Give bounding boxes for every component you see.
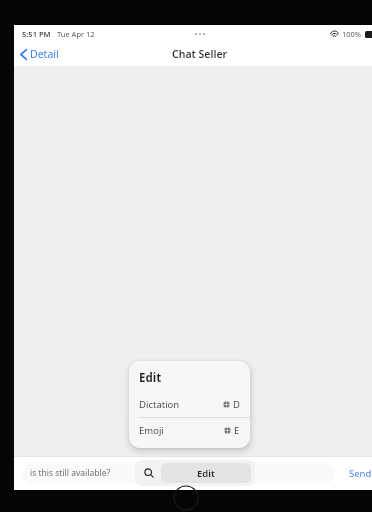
staticText: 100% (342, 29, 362, 39)
button[interactable]: Search (139, 463, 159, 483)
button[interactable]: Send (343, 463, 372, 484)
staticText: Edit (139, 370, 162, 386)
staticText: D (233, 398, 240, 411)
staticText: Tue Apr 12 (57, 29, 95, 39)
button[interactable]: Edit (161, 463, 251, 483)
button[interactable]: Emoji (129, 418, 250, 443)
staticText: Detail (30, 47, 59, 61)
staticText: Emoji (139, 424, 164, 437)
staticText: is this still available? (30, 467, 111, 479)
button[interactable]: Detail (14, 44, 67, 64)
staticText: Edit (197, 467, 215, 480)
button[interactable]: Dictation (129, 392, 250, 417)
staticText: Dictation (139, 398, 180, 411)
button[interactable]: is this still available? (22, 462, 335, 484)
staticText: E (234, 424, 240, 437)
staticText: 5:51 PM (22, 29, 51, 39)
staticText: Chat Seller (172, 47, 228, 61)
staticText: Send (349, 467, 372, 480)
